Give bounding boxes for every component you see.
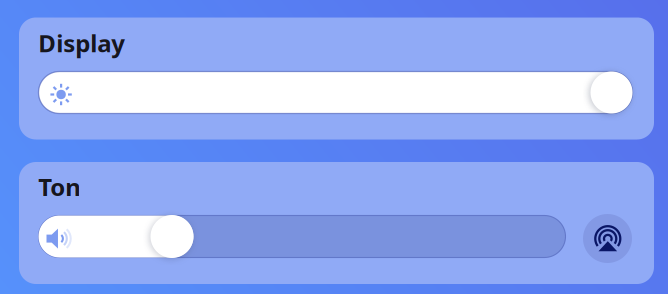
staticText: Display [38, 27, 125, 59]
button[interactable]: AirPlay [583, 214, 632, 263]
staticText: Ton [38, 171, 81, 203]
button[interactable]: Brightness [38, 71, 632, 113]
button[interactable]: Volume [38, 216, 565, 258]
